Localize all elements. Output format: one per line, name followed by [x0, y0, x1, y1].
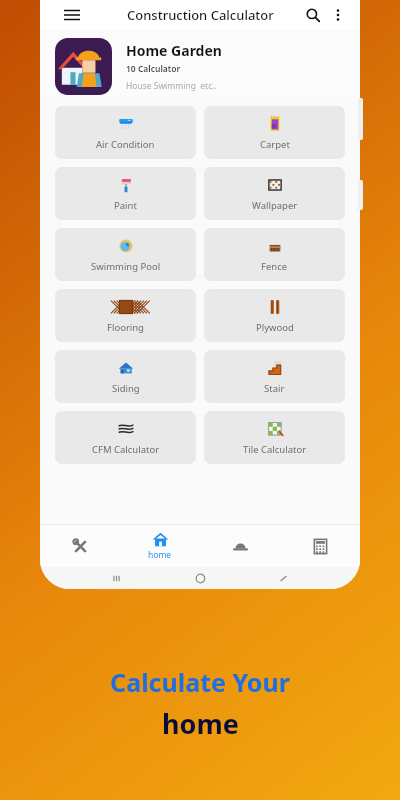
- staticText: home: [148, 549, 172, 561]
- button[interactable]: Carpet: [204, 106, 345, 159]
- staticText: Air Condition: [96, 138, 155, 151]
- button[interactable]: Swimming Pool: [55, 228, 196, 281]
- button[interactable]: Siding: [55, 350, 196, 403]
- button[interactable]: CFM Calculator: [55, 411, 196, 464]
- staticText: Fence: [261, 260, 288, 273]
- button[interactable]: home: [120, 525, 200, 567]
- staticText: Calculate Your: [110, 665, 290, 699]
- button[interactable]: Calculator: [280, 525, 360, 567]
- staticText: Swimming Pool: [91, 260, 161, 273]
- button[interactable]: Helmet: [200, 525, 280, 567]
- button[interactable]: More options: [326, 3, 350, 27]
- staticText: Construction Calculator: [127, 6, 274, 24]
- staticText: House Swimming etc..: [126, 80, 217, 92]
- button[interactable]: Tile Calculator: [204, 411, 345, 464]
- staticText: Wallpaper: [252, 199, 298, 212]
- staticText: CFM Calculator: [92, 443, 160, 456]
- button[interactable]: Paint: [55, 167, 196, 220]
- staticText: Paint: [114, 199, 137, 212]
- button[interactable]: Menu: [58, 1, 86, 29]
- staticText: 10 Calculator: [126, 63, 181, 75]
- staticText: Home Garden: [126, 41, 222, 60]
- staticText: Siding: [112, 382, 140, 395]
- button[interactable]: Tools: [40, 525, 120, 567]
- button[interactable]: Air Condition: [55, 106, 196, 159]
- button[interactable]: Flooring: [55, 289, 196, 342]
- button[interactable]: Stair: [204, 350, 345, 403]
- button[interactable]: Plywood: [204, 289, 345, 342]
- button[interactable]: Search: [300, 2, 326, 28]
- button[interactable]: Fence: [204, 228, 345, 281]
- staticText: home: [162, 705, 239, 742]
- staticText: Tile Calculator: [243, 443, 307, 456]
- staticText: Stair: [264, 382, 285, 395]
- button[interactable]: Wallpaper: [204, 167, 345, 220]
- staticText: Plywood: [256, 321, 294, 334]
- button[interactable]: Home Garden: [55, 38, 360, 95]
- staticText: Flooring: [107, 321, 144, 334]
- staticText: Carpet: [260, 138, 290, 151]
